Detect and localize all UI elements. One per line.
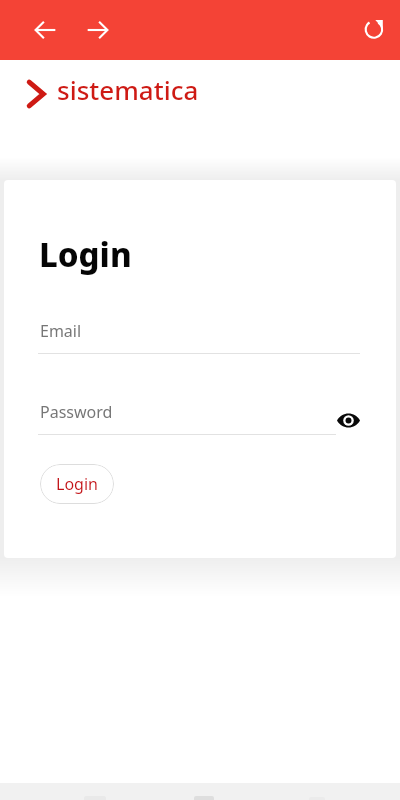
button[interactable]: Login bbox=[40, 464, 114, 504]
staticText: Password bbox=[40, 401, 113, 423]
staticText: Email bbox=[40, 320, 82, 342]
button[interactable]: Back bbox=[28, 13, 61, 46]
button[interactable]: Home bbox=[171, 783, 237, 800]
button[interactable]: Reload bbox=[354, 9, 390, 45]
button[interactable]: Show password bbox=[332, 404, 364, 436]
staticText: sistematica bbox=[57, 72, 199, 107]
staticText: Login bbox=[39, 232, 132, 277]
staticText: Login bbox=[56, 473, 98, 495]
button[interactable]: Forward bbox=[81, 13, 114, 46]
